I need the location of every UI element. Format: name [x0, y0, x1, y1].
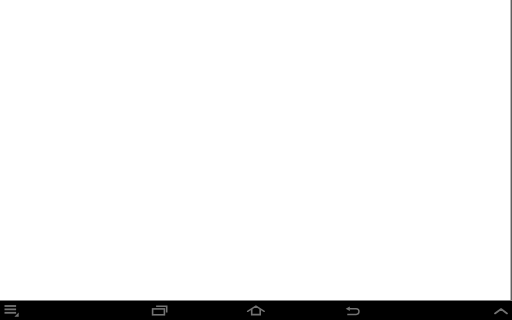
button[interactable]: Menu — [0, 300, 26, 320]
button[interactable]: Back — [340, 300, 364, 320]
button[interactable]: Expand — [490, 300, 512, 320]
button[interactable]: Recent apps — [148, 300, 170, 320]
button[interactable]: Home — [244, 300, 268, 320]
